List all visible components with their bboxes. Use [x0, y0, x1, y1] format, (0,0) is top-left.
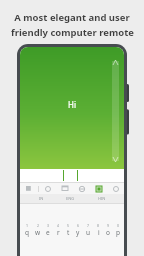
button[interactable]: 2 — [32, 204, 43, 256]
button[interactable]: 1 — [21, 204, 32, 256]
staticText: e — [46, 228, 50, 237]
button[interactable]: 0 — [113, 204, 123, 256]
staticText: u — [86, 228, 91, 237]
staticText: r — [57, 228, 60, 237]
staticText: w — [35, 228, 41, 237]
staticText: t — [67, 228, 70, 237]
staticText: HIN — [98, 196, 106, 201]
staticText: 0 — [117, 223, 120, 228]
staticText: p — [116, 228, 120, 237]
button[interactable]: Keyboard tool 0 — [20, 183, 38, 194]
staticText: 8 — [97, 223, 100, 228]
button[interactable]: Keyboard tool 5 — [107, 183, 124, 194]
button[interactable]: Keyboard tool 3 — [73, 183, 90, 194]
staticText: 7 — [87, 223, 90, 228]
staticText: 1 — [26, 223, 29, 228]
button[interactable]: Keyboard tool 4 — [90, 183, 107, 194]
staticText: o — [106, 228, 110, 237]
button[interactable]: 8 — [93, 204, 103, 256]
button[interactable]: Keyboard tool 1 — [39, 183, 56, 194]
staticText: 4 — [57, 223, 60, 228]
staticText: i — [98, 228, 100, 237]
button[interactable]: 3 — [43, 204, 53, 256]
staticText: y — [76, 228, 80, 237]
staticText: friendly computer remote — [11, 26, 134, 39]
button[interactable]: 5 — [63, 204, 73, 256]
staticText: 9 — [107, 223, 110, 228]
button[interactable]: Hi — [20, 47, 124, 169]
button[interactable]: 4 — [53, 204, 63, 256]
staticText: q — [25, 228, 29, 237]
button[interactable]: 6 — [73, 204, 83, 256]
staticText: IN — [39, 196, 44, 201]
staticText: Hi — [68, 99, 76, 110]
staticText: 2 — [37, 223, 40, 228]
button[interactable]: IN — [35, 196, 48, 201]
staticText: ENG — [66, 196, 75, 201]
staticText: A most elegant and user — [14, 11, 130, 24]
button[interactable]: Keyboard tool 2 — [56, 183, 73, 194]
button[interactable]: ENG — [62, 196, 79, 201]
button[interactable]: 9 — [103, 204, 113, 256]
button[interactable]: HIN — [94, 196, 110, 201]
staticText: 6 — [77, 223, 80, 228]
staticText: 5 — [67, 223, 70, 228]
staticText: 3 — [47, 223, 50, 228]
button[interactable]: 7 — [83, 204, 93, 256]
